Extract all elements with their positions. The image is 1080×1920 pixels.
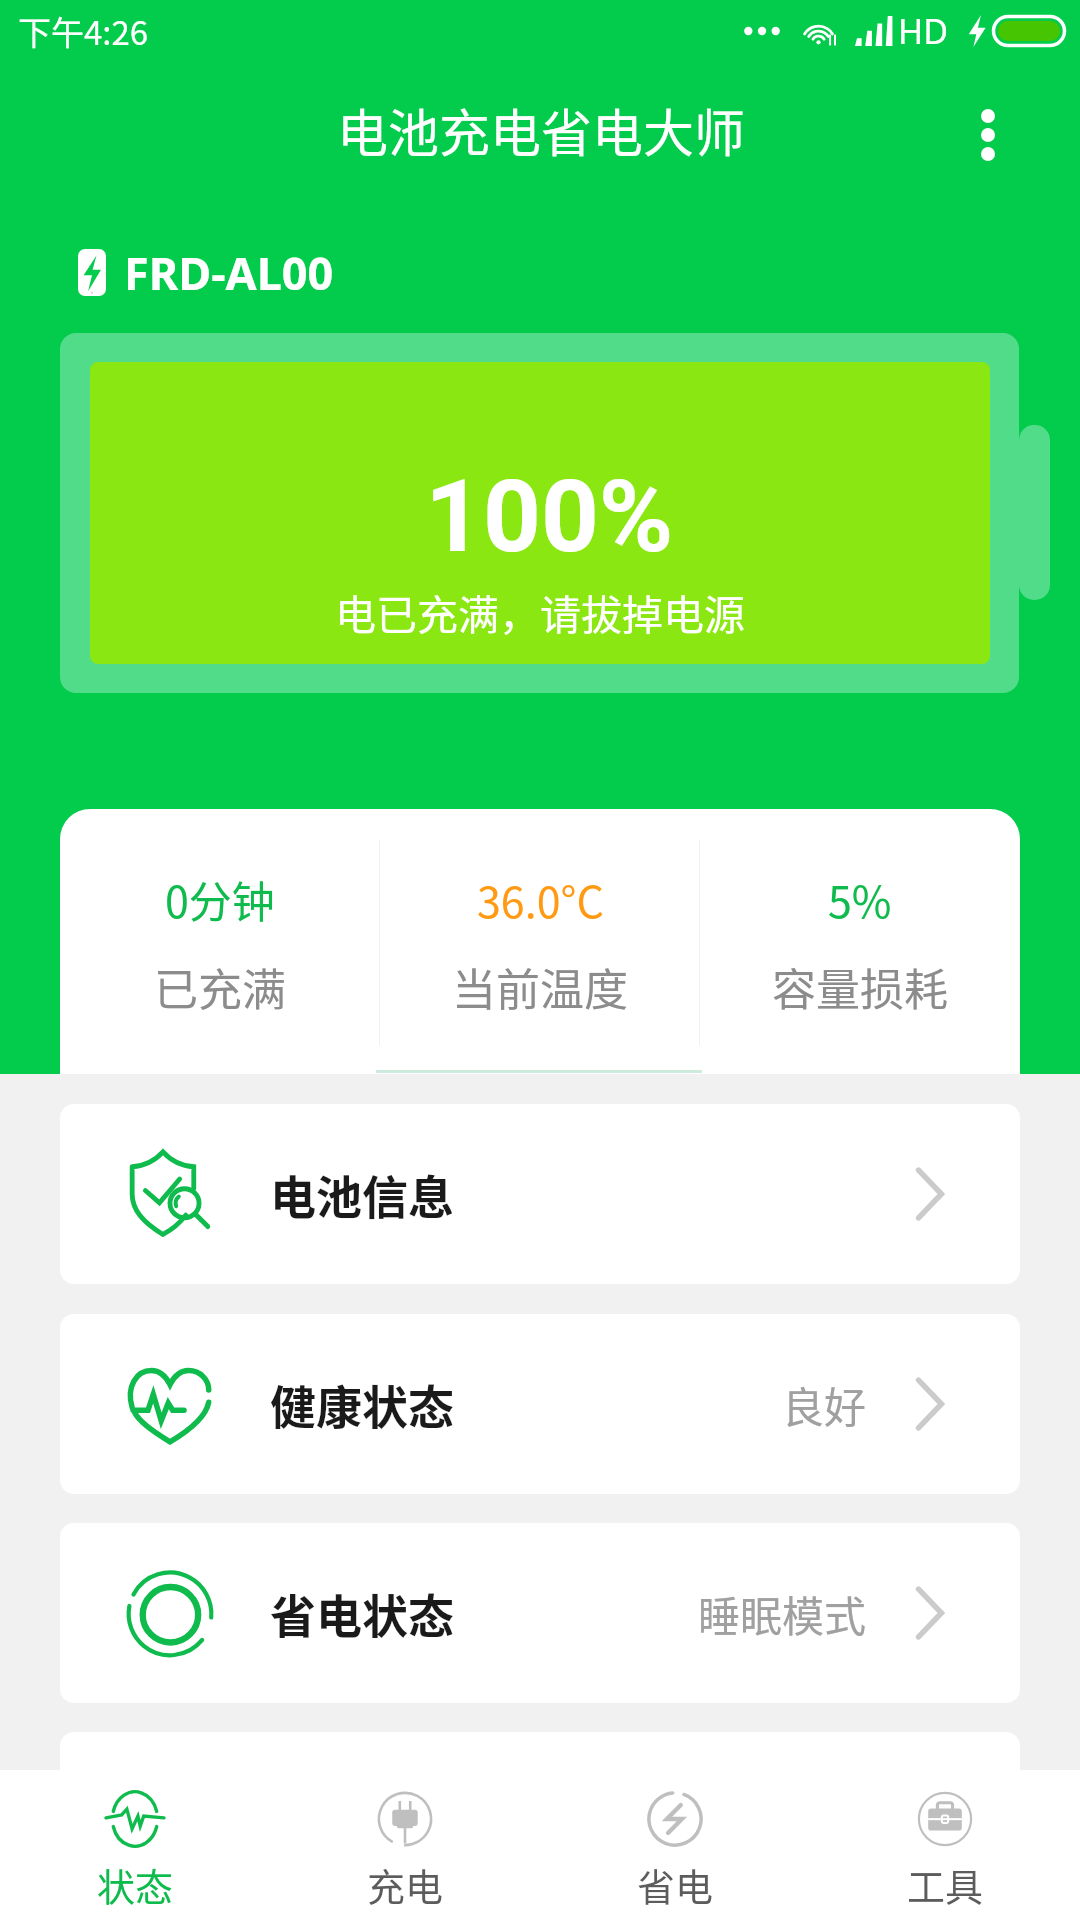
button[interactable]: 电池信息 — [60, 1104, 1020, 1284]
staticText: 充电 — [367, 1857, 444, 1912]
button[interactable]: 省电状态 — [60, 1523, 1020, 1703]
staticText: HD — [898, 8, 949, 54]
staticText: 电池信息 — [270, 1161, 454, 1228]
staticText: 省电状态 — [270, 1580, 454, 1647]
staticText: 100% — [425, 457, 674, 575]
staticText: 当前温度 — [452, 955, 628, 1019]
staticText: 0分钟 — [165, 868, 275, 930]
staticText: 状态 — [97, 1857, 174, 1912]
button[interactable]: More options — [933, 80, 1043, 190]
staticText: 电池充电省电大师 — [337, 93, 746, 167]
button[interactable]: 省电 — [540, 1770, 810, 1920]
button[interactable] — [60, 1732, 1020, 1912]
button[interactable]: 0分钟 — [60, 809, 1020, 1074]
staticText: 36.0°C — [477, 868, 604, 930]
button[interactable]: 健康状态 — [60, 1314, 1020, 1494]
button[interactable]: 充电 — [270, 1770, 540, 1920]
staticText: 睡眠模式 — [698, 1583, 867, 1644]
staticText: 良好 — [782, 1374, 867, 1435]
staticText: 省电 — [637, 1857, 714, 1912]
staticText: 健康状态 — [270, 1371, 454, 1438]
staticText: 容量损耗 — [772, 955, 948, 1019]
button[interactable]: 状态 — [0, 1770, 270, 1920]
staticText: 工具 — [907, 1857, 984, 1912]
staticText: 下午4:26 — [18, 7, 149, 55]
staticText: FRD-AL00 — [124, 242, 334, 303]
staticText: 已充满 — [154, 955, 286, 1019]
staticText: 电已充满，请拔掉电源 — [335, 582, 745, 641]
button[interactable]: 工具 — [810, 1770, 1080, 1920]
staticText: 5% — [828, 868, 892, 930]
